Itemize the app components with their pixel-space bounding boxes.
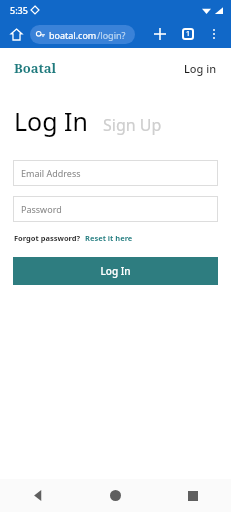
button[interactable]: Tabs	[177, 23, 199, 45]
staticText: Password	[21, 203, 62, 215]
button[interactable]: Sign Up	[103, 114, 162, 138]
button[interactable]: Password	[13, 196, 218, 222]
button[interactable]: More options	[203, 23, 225, 45]
button[interactable]: boatal.com	[30, 25, 135, 44]
staticText: 1	[186, 29, 191, 39]
button[interactable]: New tab	[149, 23, 171, 45]
button[interactable]: Home	[6, 24, 26, 44]
button[interactable]: Back	[0, 479, 77, 512]
button[interactable]: Home	[77, 479, 154, 512]
button[interactable]: Log in	[184, 61, 217, 76]
staticText: boatal.com	[49, 29, 97, 41]
staticText: /login?ke	[97, 29, 129, 41]
button[interactable]: Log In	[13, 257, 218, 285]
button[interactable]: Recent apps	[154, 479, 231, 512]
staticText: Forgot password?	[14, 233, 81, 243]
staticText: Log In	[100, 264, 131, 278]
button[interactable]: Reset it here	[85, 233, 133, 243]
button[interactable]: Email Address	[13, 160, 218, 186]
button[interactable]: Log In	[14, 104, 89, 138]
staticText: 5:35	[10, 4, 28, 16]
button[interactable]: Boatal	[14, 59, 57, 77]
staticText: Email Address	[21, 167, 81, 179]
